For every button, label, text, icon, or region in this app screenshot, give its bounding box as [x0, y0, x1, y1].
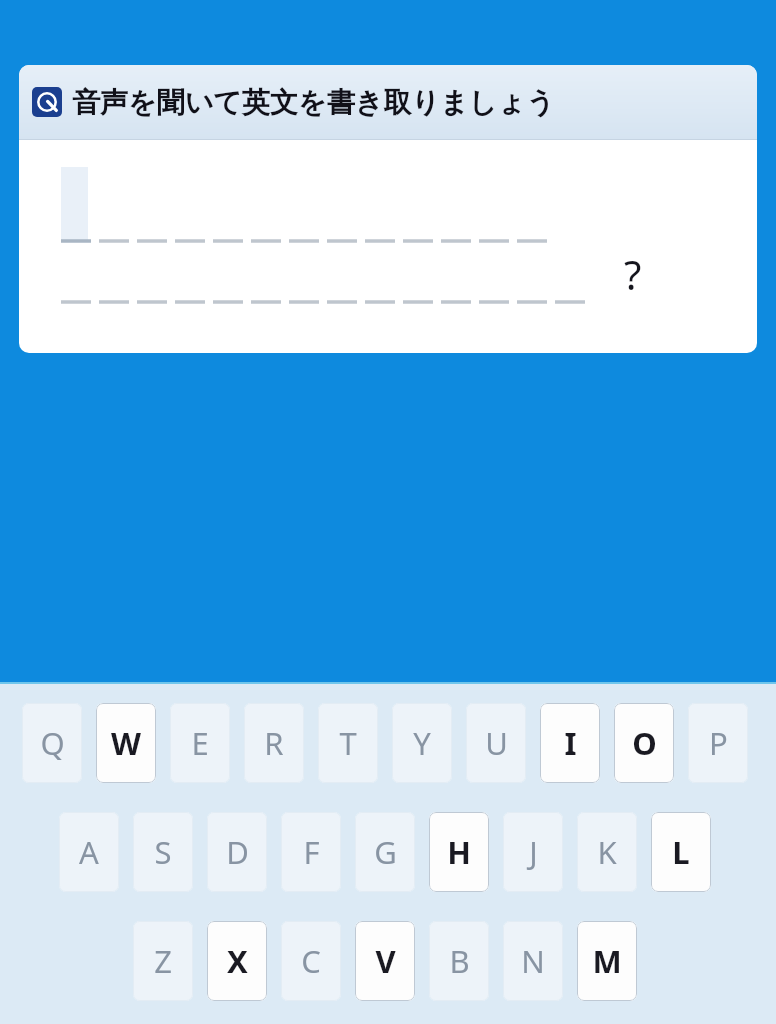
staticText: T [339, 722, 357, 764]
button[interactable]: L [651, 812, 711, 892]
button[interactable]: A [59, 812, 119, 892]
button[interactable]: Y [392, 703, 452, 783]
button[interactable]: G [355, 812, 415, 892]
staticText: ? [624, 247, 642, 301]
staticText: Y [413, 722, 431, 764]
button[interactable]: Q [22, 703, 82, 783]
staticText: N [521, 940, 545, 982]
staticText: I [564, 722, 577, 764]
button[interactable]: B [429, 921, 489, 1001]
staticText: F [303, 831, 320, 873]
button[interactable]: U [466, 703, 526, 783]
staticText: Z [154, 940, 172, 982]
staticText: D [226, 831, 249, 873]
button[interactable]: F [281, 812, 341, 892]
button[interactable]: S [133, 812, 193, 892]
staticText: K [597, 831, 617, 873]
staticText: B [449, 940, 470, 982]
staticText: L [672, 831, 690, 873]
button[interactable]: K [577, 812, 637, 892]
staticText: P [709, 722, 728, 764]
button[interactable]: J [503, 812, 563, 892]
staticText: G [374, 831, 397, 873]
button[interactable]: M [577, 921, 637, 1001]
staticText: Q [40, 722, 65, 764]
staticText: M [592, 940, 622, 982]
staticText: U [485, 722, 508, 764]
button[interactable]: Play audio [19, 65, 757, 353]
staticText: A [79, 831, 99, 873]
button[interactable]: X [207, 921, 267, 1001]
button[interactable]: W [96, 703, 156, 783]
staticText: O [632, 722, 657, 764]
button[interactable]: H [429, 812, 489, 892]
staticText: S [154, 831, 172, 873]
button[interactable]: C [281, 921, 341, 1001]
button[interactable]: O [614, 703, 674, 783]
button[interactable]: Z [133, 921, 193, 1001]
button[interactable]: N [503, 921, 563, 1001]
button[interactable]: D [207, 812, 267, 892]
button[interactable]: T [318, 703, 378, 783]
button[interactable]: V [355, 921, 415, 1001]
button[interactable]: R [244, 703, 304, 783]
staticText: R [264, 722, 284, 764]
staticText: W [111, 722, 141, 764]
button[interactable]: Play audio [32, 87, 62, 117]
staticText: 音声を聞いて英文を書き取りましょう [72, 85, 555, 120]
button[interactable]: E [170, 703, 230, 783]
button[interactable]: I [540, 703, 600, 783]
staticText: J [529, 831, 538, 873]
staticText: H [447, 831, 471, 873]
staticText: E [191, 722, 209, 764]
staticText: V [375, 940, 396, 982]
button[interactable]: P [688, 703, 748, 783]
staticText: X [227, 940, 248, 982]
staticText: C [301, 940, 321, 982]
